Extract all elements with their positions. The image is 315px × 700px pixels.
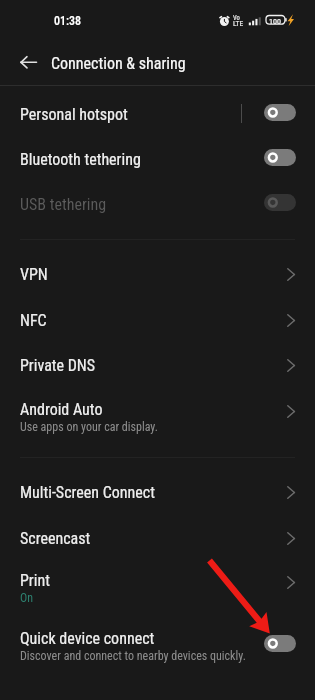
staticText: Print (20, 571, 50, 590)
staticText: Discover and connect to nearby devices q… (20, 649, 246, 663)
button[interactable]: Screencast (0, 515, 315, 560)
staticText: VPN (20, 265, 48, 284)
button[interactable]: Toggle true (264, 635, 296, 652)
button[interactable]: Toggle false (264, 194, 296, 211)
staticText: Use apps on your car display. (20, 420, 158, 434)
staticText: LTE (233, 19, 244, 28)
staticText: Vo (233, 14, 240, 22)
button[interactable]: USB tethering (0, 181, 315, 226)
staticText: Multi-Screen Connect (20, 483, 155, 502)
staticText: 100 (269, 17, 281, 26)
staticText: NFC (20, 311, 47, 330)
button[interactable]: Multi-Screen Connect (0, 469, 315, 514)
button[interactable]: Toggle true (264, 104, 296, 121)
button[interactable]: NFC (0, 297, 315, 342)
button[interactable]: Print (0, 570, 315, 620)
button[interactable]: Back (7, 47, 50, 78)
staticText: Personal hotspot (20, 105, 128, 124)
button[interactable]: Quick device connect (0, 628, 315, 686)
staticText: USB tethering (20, 195, 107, 214)
staticText: Connection & sharing (51, 54, 186, 73)
button[interactable]: VPN (0, 251, 315, 296)
button[interactable]: Bluetooth tethering (0, 136, 315, 181)
button[interactable]: Private DNS (0, 342, 315, 387)
staticText: Android Auto (20, 400, 103, 419)
staticText: 01:38 (54, 14, 82, 28)
button[interactable]: Toggle true (264, 149, 296, 166)
button[interactable]: Android Auto (0, 399, 315, 449)
staticText: Private DNS (20, 356, 96, 375)
staticText: On (20, 591, 34, 605)
button[interactable]: Personal hotspot (0, 91, 315, 136)
staticText: Bluetooth tethering (20, 150, 141, 169)
staticText: Screencast (20, 529, 91, 548)
staticText: Quick device connect (20, 629, 155, 648)
